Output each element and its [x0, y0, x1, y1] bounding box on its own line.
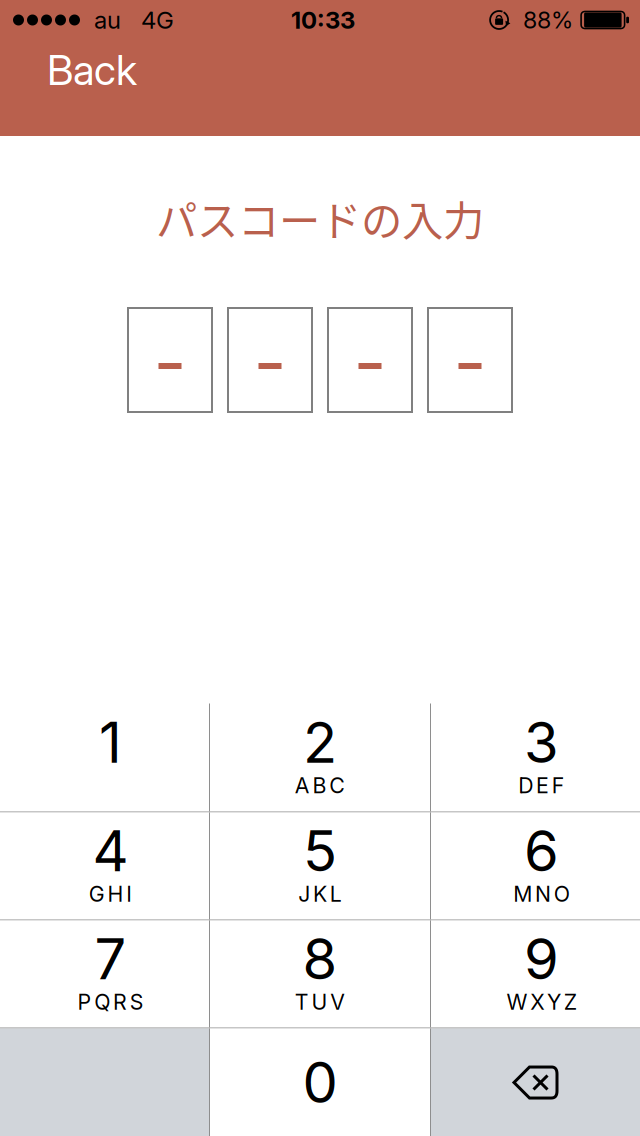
staticText: 10:33	[291, 5, 355, 34]
button[interactable]: 9	[431, 920, 640, 1027]
button[interactable]: 0	[210, 1028, 430, 1136]
button[interactable]: 1	[0, 703, 209, 811]
staticText: ABC	[295, 773, 345, 798]
staticText: 8	[302, 925, 337, 993]
staticText: 9	[524, 925, 559, 993]
button[interactable]: 5	[210, 812, 430, 919]
staticText: TUV	[295, 989, 345, 1015]
staticText: au	[94, 5, 121, 34]
staticText: 88%	[523, 6, 573, 34]
staticText: 0	[302, 1049, 337, 1116]
staticText: MNO	[513, 881, 570, 907]
button[interactable]: Back	[0, 40, 237, 96]
staticText: 4	[92, 817, 128, 885]
staticText: 1	[99, 709, 122, 776]
button[interactable]: Delete	[431, 1028, 640, 1136]
staticText: 6	[524, 817, 559, 885]
button[interactable]: 6	[431, 812, 640, 919]
staticText: DEF	[518, 773, 565, 798]
staticText: 7	[94, 925, 126, 993]
staticText: 3	[524, 709, 559, 776]
staticText: GHI	[89, 881, 132, 907]
staticText: WXYZ	[506, 989, 577, 1015]
staticText: JKL	[298, 881, 342, 907]
staticText: 2	[303, 709, 337, 776]
staticText: Back	[47, 45, 137, 95]
staticText: PQRS	[77, 989, 144, 1015]
staticText: 5	[303, 817, 337, 885]
staticText: 4G	[141, 5, 174, 34]
button[interactable]: 3	[431, 703, 640, 811]
staticText: パスコードの入力	[156, 188, 484, 248]
button[interactable]: 2	[210, 703, 430, 811]
button[interactable]: 8	[210, 920, 430, 1027]
button[interactable]: 7	[0, 920, 209, 1027]
button[interactable]: 4	[0, 812, 209, 919]
